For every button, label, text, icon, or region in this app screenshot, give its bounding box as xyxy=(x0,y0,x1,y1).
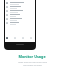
button[interactable] xyxy=(6,21,34,25)
button[interactable] xyxy=(6,1,34,5)
button[interactable] xyxy=(6,9,34,13)
button[interactable] xyxy=(6,5,34,9)
button[interactable]: Home xyxy=(6,37,8,39)
button[interactable] xyxy=(6,13,34,17)
staticText: Monitor Usage xyxy=(18,54,46,59)
staticText: you spend on apps xyxy=(23,64,42,67)
staticText: Keep track of how much time xyxy=(18,61,47,64)
button[interactable] xyxy=(6,17,34,21)
